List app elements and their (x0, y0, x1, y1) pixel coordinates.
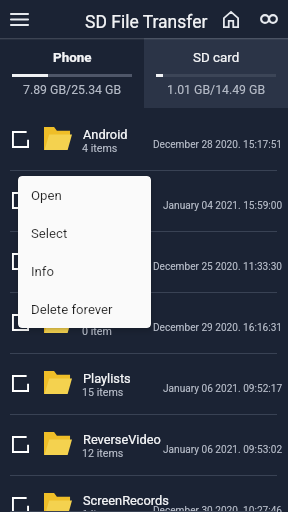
staticText: December 25 2020. 11:33:30 (153, 261, 283, 273)
staticText: Delete forever (31, 302, 113, 317)
button[interactable]: SD card (144, 38, 288, 108)
staticText: Info (31, 264, 54, 279)
button[interactable]: ScreenRecords (0, 476, 288, 512)
button[interactable]: Info (18, 252, 151, 290)
staticText: 4 items (82, 142, 118, 155)
staticText: Music (83, 310, 118, 325)
staticText: December 29 2020. 16:16:31 (153, 322, 283, 334)
staticText: Select (31, 226, 68, 241)
staticText: 7.89 GB/25.34 GB (23, 83, 122, 97)
staticText: 12 items (82, 447, 124, 460)
button[interactable]: ReverseVideo (0, 415, 288, 476)
staticText: SD card (193, 50, 240, 66)
button[interactable]: Delete forever (18, 290, 151, 328)
button[interactable]: Alarms (0, 171, 288, 232)
staticText: January 06 2021. 09:52:17 (163, 383, 283, 395)
staticText: Phone (53, 50, 92, 66)
staticText: ScreenRecords (83, 493, 169, 508)
staticText: December 30 2020. 10:27:46 (153, 505, 283, 512)
button[interactable]: Video (0, 232, 288, 293)
staticText: 15 items (82, 386, 124, 399)
button[interactable]: Menu (10, 12, 28, 26)
button[interactable]: Phone (0, 38, 144, 108)
staticText: 1 item (82, 508, 112, 512)
staticText: ReverseVideo (83, 432, 161, 447)
button[interactable]: Open (18, 176, 151, 214)
staticText: 1.01 GB/14.49 GB (167, 83, 266, 97)
staticText: 0 item (82, 325, 112, 338)
staticText: Playlists (83, 371, 131, 386)
staticText: Android (83, 127, 128, 142)
button[interactable]: Music (0, 293, 288, 354)
staticText: Open (31, 188, 62, 203)
staticText: January 04 2021. 15:59:00 (163, 200, 283, 212)
button[interactable]: Android (0, 110, 288, 171)
staticText: SD File Transfer (85, 12, 208, 33)
button[interactable]: Playlists (0, 354, 288, 415)
button[interactable]: Home (221, 9, 241, 29)
staticText: January 06 2021. 09:53:02 (163, 444, 283, 456)
button[interactable]: Connect (258, 12, 280, 26)
button[interactable]: Select (18, 214, 151, 252)
staticText: December 28 2020. 15:17:51 (153, 139, 283, 151)
